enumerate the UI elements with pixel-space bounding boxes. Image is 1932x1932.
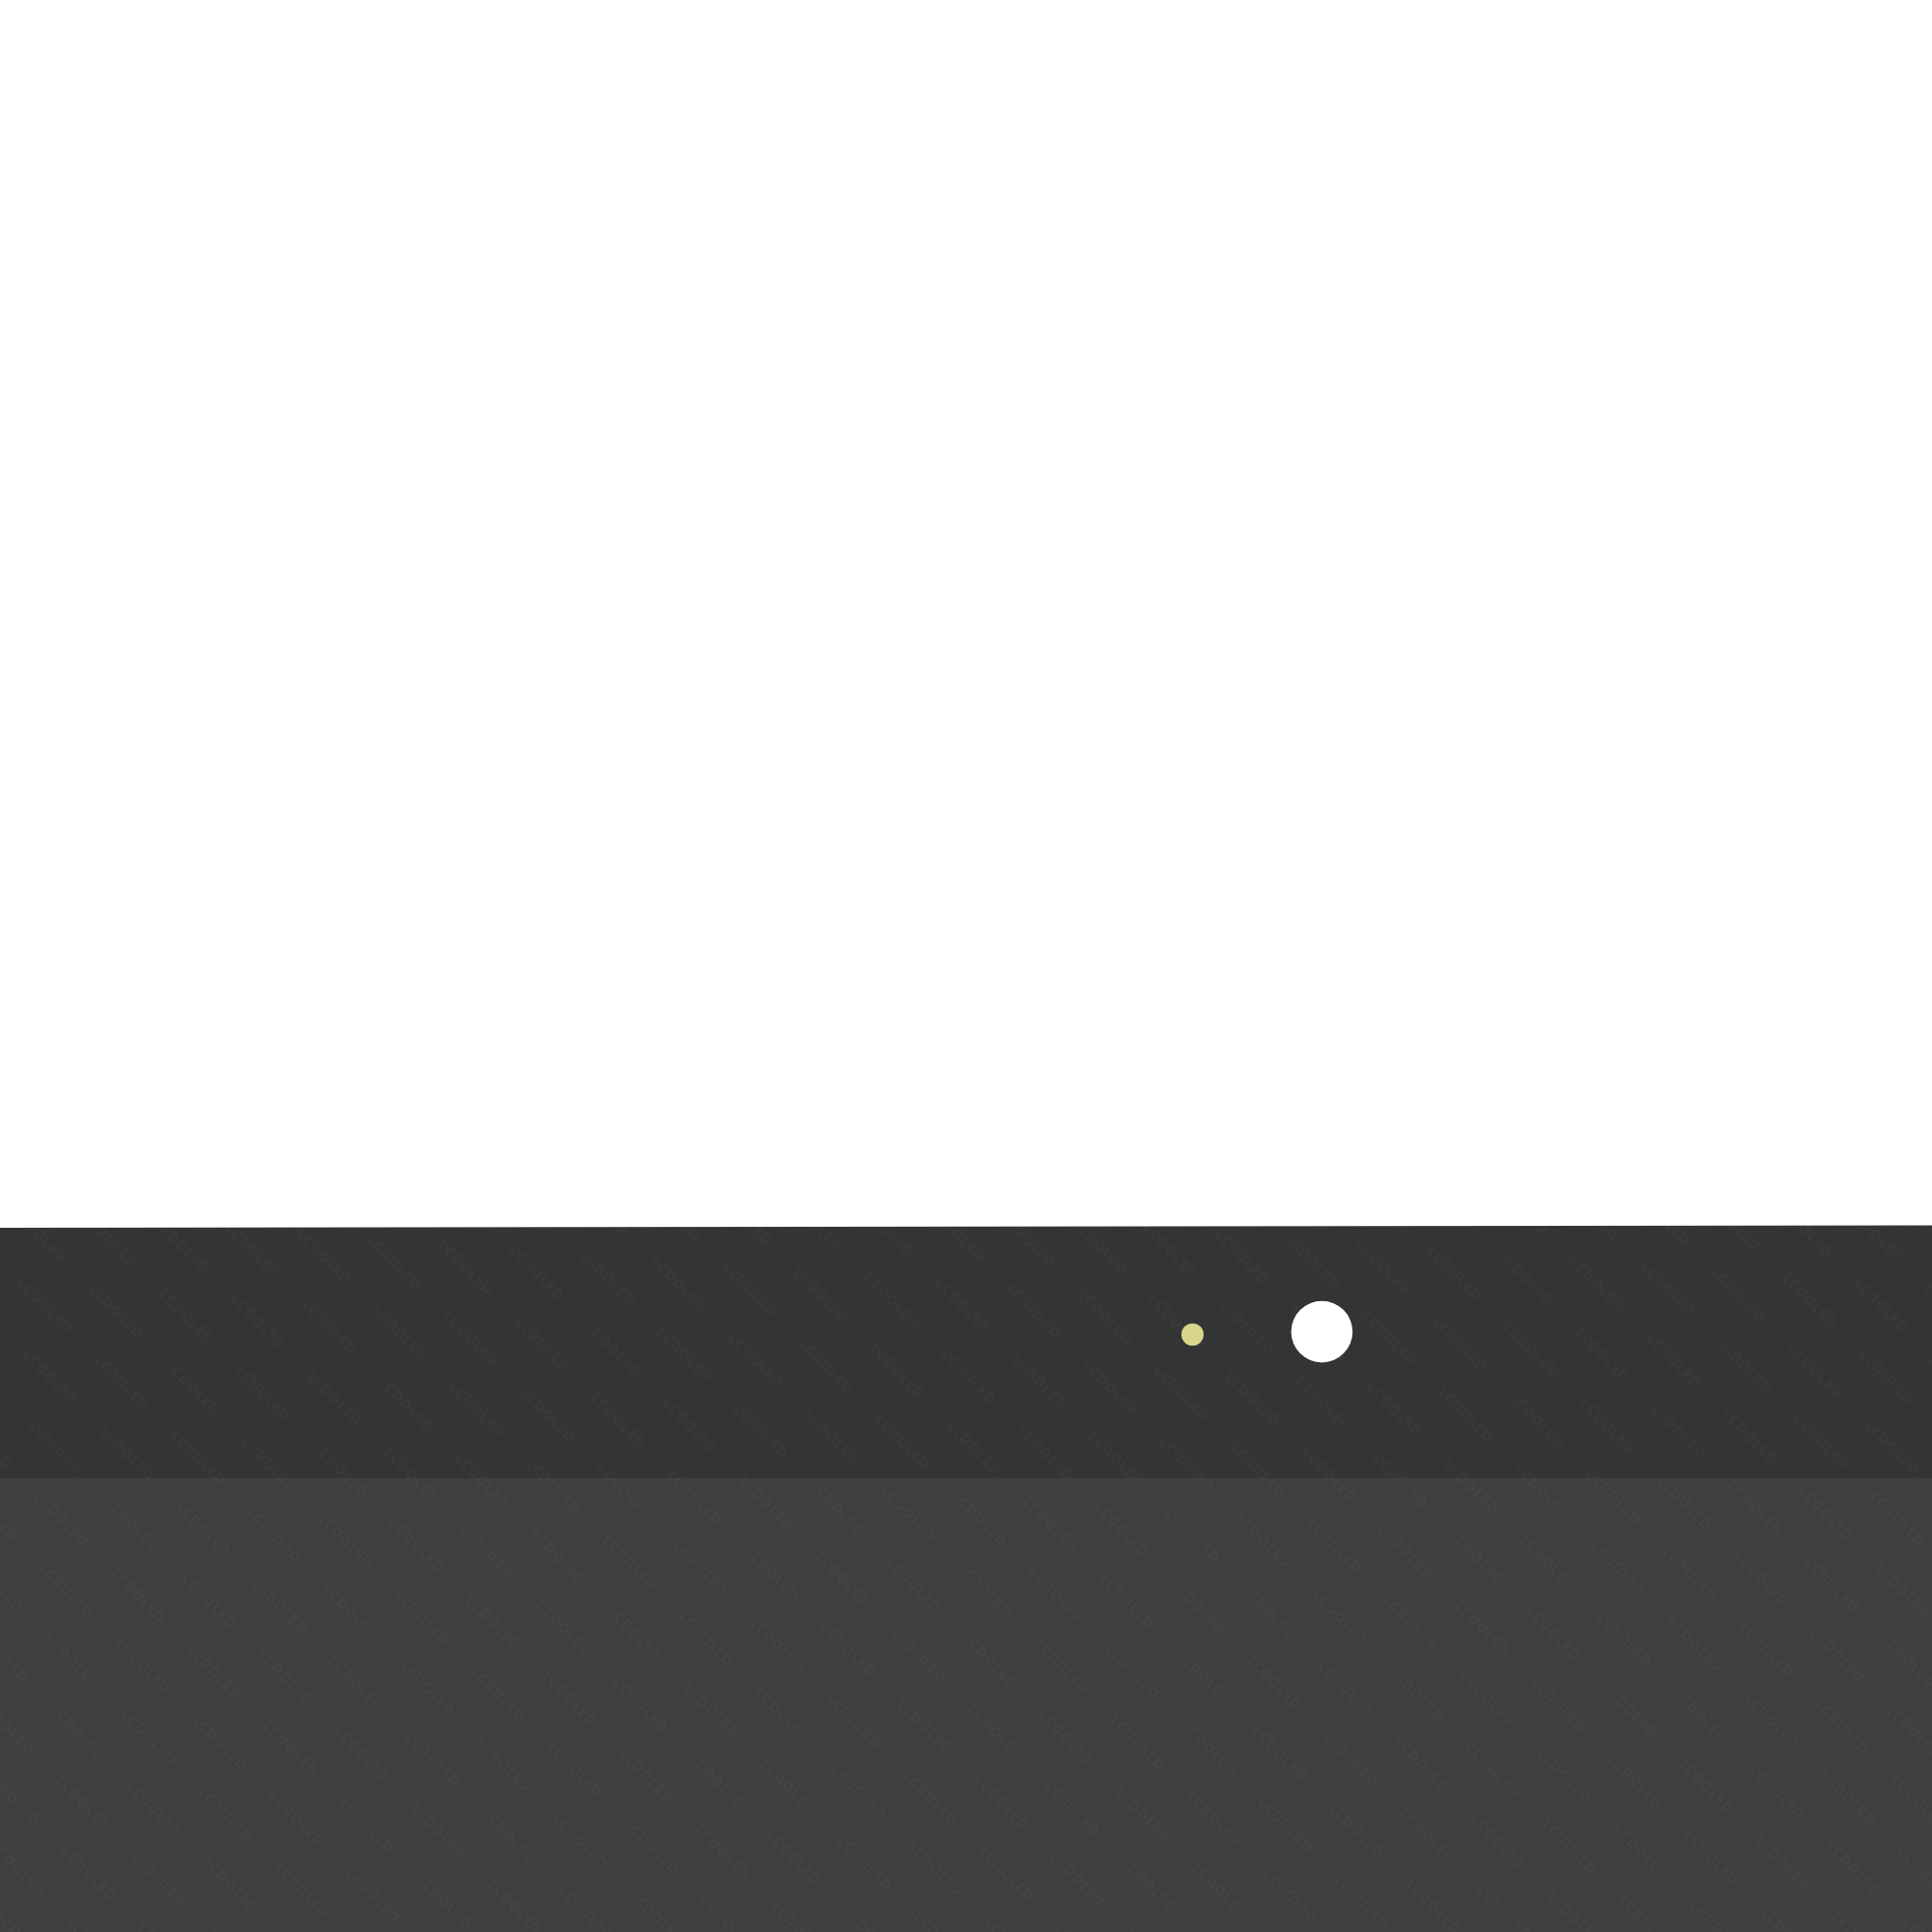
button[interactable]: Camera [1292, 1301, 1353, 1363]
button[interactable]: Status indicator light [1181, 1323, 1204, 1346]
